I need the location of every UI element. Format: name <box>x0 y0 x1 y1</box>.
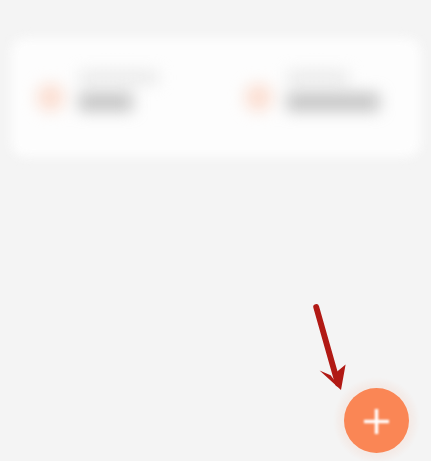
button[interactable]: Balance <box>11 38 216 157</box>
button[interactable]: Spent this month <box>216 38 421 157</box>
other: Arrow pointing to the add button <box>0 0 431 461</box>
button[interactable]: Add <box>344 388 409 453</box>
